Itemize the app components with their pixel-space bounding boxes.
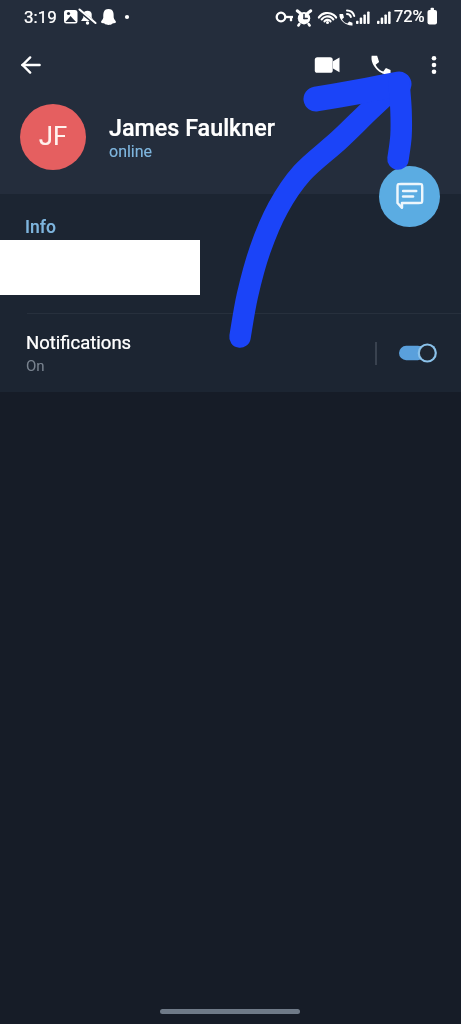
button[interactable]: Back [9, 43, 53, 87]
staticText: 72% [394, 7, 425, 26]
staticText: online [109, 142, 153, 161]
button[interactable]: JF [0, 104, 461, 170]
button[interactable]: Notifications [0, 314, 461, 392]
staticText: James Faulkner [109, 114, 275, 141]
button[interactable]: Call [358, 43, 402, 87]
staticText: Info [25, 217, 56, 238]
staticText: Notifications [26, 332, 132, 354]
staticText: On [26, 357, 45, 375]
button[interactable]: More options [412, 43, 456, 87]
button[interactable]: Send message [379, 166, 440, 227]
staticText: 3:19 [24, 7, 57, 27]
button[interactable]: Notifications toggle [399, 341, 441, 365]
button[interactable]: Video call [305, 43, 349, 87]
staticText: JF [39, 122, 67, 152]
